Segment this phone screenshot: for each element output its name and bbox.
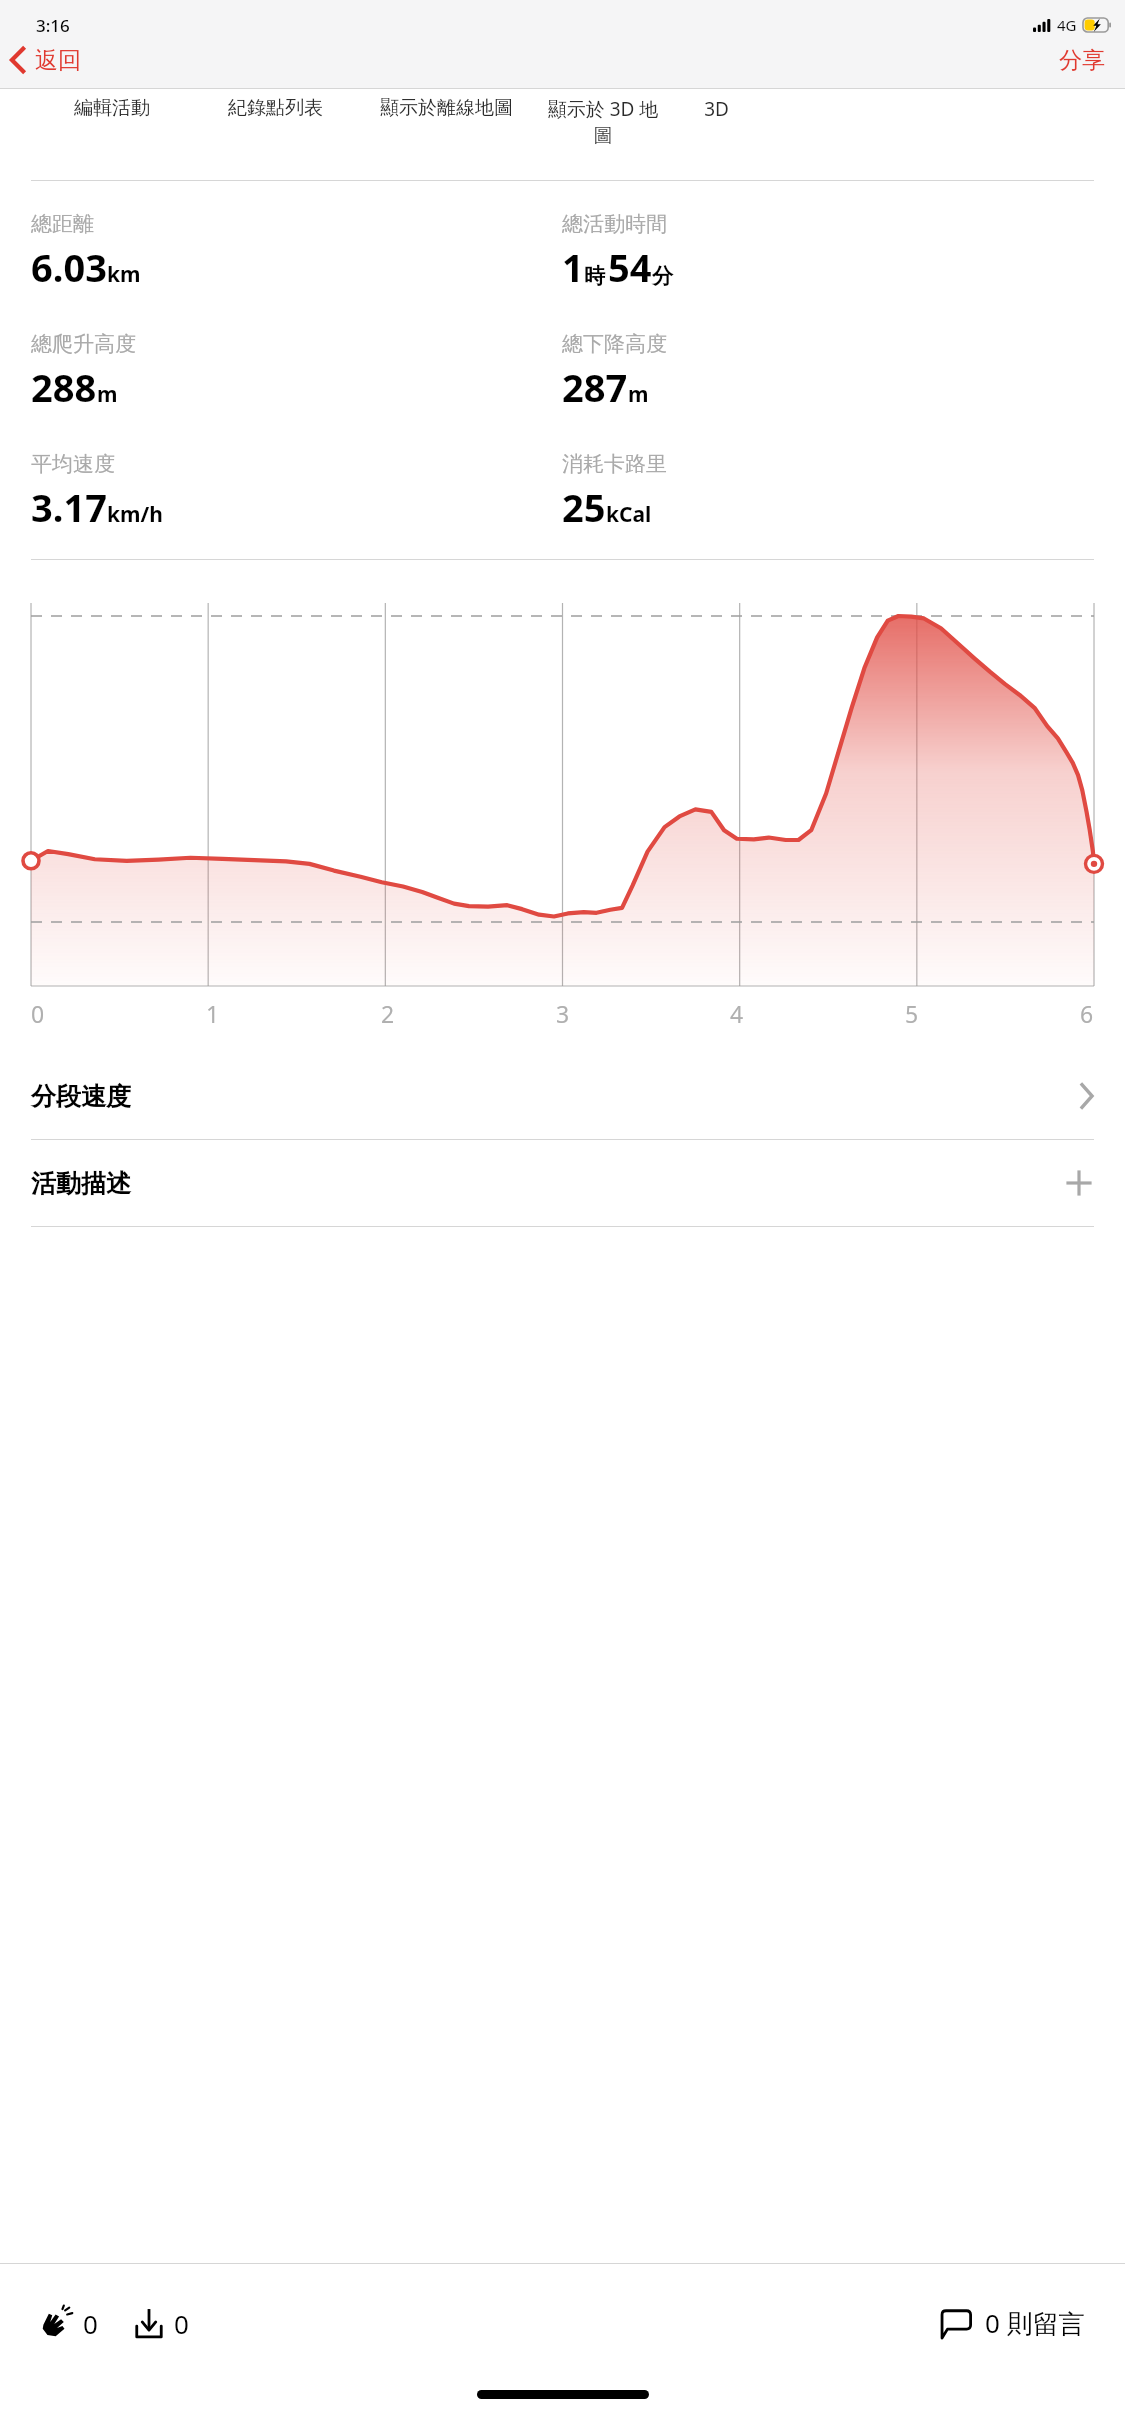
button[interactable]: Download bbox=[126, 2296, 195, 2351]
staticText: 3 bbox=[556, 998, 570, 1029]
staticText: 紀錄點列表 bbox=[228, 96, 323, 120]
staticText: 活動描述 bbox=[31, 1168, 131, 1199]
staticText: 54 bbox=[608, 241, 652, 293]
staticText: 3.17 bbox=[31, 481, 107, 533]
staticText: 287 bbox=[562, 361, 628, 413]
staticText: km/h bbox=[107, 500, 163, 529]
other: Add description bbox=[1064, 1168, 1094, 1198]
button[interactable]: 活動描述 bbox=[31, 1140, 1094, 1226]
button[interactable]: 顯示於離線地圖 bbox=[372, 96, 520, 120]
staticText: 總下降高度 bbox=[562, 331, 667, 357]
staticText: 1 bbox=[562, 241, 584, 293]
button[interactable]: 顯示於 3D 地圖 bbox=[542, 96, 664, 147]
staticText: 總活動時間 bbox=[562, 211, 667, 237]
button[interactable]: 3D bbox=[686, 96, 746, 122]
staticText: 4G bbox=[1057, 15, 1077, 35]
staticText: 顯示於離線地圖 bbox=[380, 96, 513, 120]
other: Download bbox=[132, 2307, 166, 2341]
staticText: 顯示於 3D 地圖 bbox=[542, 96, 664, 147]
staticText: 4 bbox=[730, 998, 744, 1029]
button[interactable]: 編輯活動 bbox=[52, 96, 172, 120]
staticText: kCal bbox=[606, 500, 652, 529]
button[interactable]: 返回 bbox=[0, 32, 95, 88]
staticText: 分 bbox=[652, 263, 673, 289]
staticText: 返回 bbox=[35, 46, 81, 75]
staticText: m bbox=[97, 380, 118, 409]
staticText: 總爬升高度 bbox=[31, 331, 136, 357]
button[interactable]: Applaud bbox=[34, 2296, 104, 2351]
staticText: 編輯活動 bbox=[74, 96, 150, 120]
staticText: 6 bbox=[1080, 998, 1094, 1029]
staticText: 總距離 bbox=[31, 211, 94, 237]
staticText: 0 則留言 bbox=[985, 2305, 1085, 2341]
staticText: 分享 bbox=[1059, 46, 1105, 75]
button[interactable]: 分段速度 bbox=[31, 1053, 1094, 1139]
staticText: 288 bbox=[31, 361, 97, 413]
staticText: 0 bbox=[31, 998, 45, 1029]
staticText: 消耗卡路里 bbox=[562, 451, 667, 477]
staticText: 分段速度 bbox=[31, 1081, 131, 1112]
staticText: 時 bbox=[584, 263, 605, 289]
staticText: 2 bbox=[381, 998, 395, 1029]
staticText: 1 bbox=[206, 998, 220, 1029]
staticText: 3:16 bbox=[36, 14, 70, 37]
staticText: 5 bbox=[905, 998, 919, 1029]
button[interactable]: 0 則留言 bbox=[934, 2295, 1091, 2351]
staticText: m bbox=[628, 380, 649, 409]
button[interactable]: 分享 bbox=[1039, 32, 1125, 88]
staticText: 3D bbox=[704, 96, 729, 122]
other: Applaud bbox=[40, 2307, 74, 2341]
staticText: 6.03 bbox=[31, 241, 107, 293]
staticText: km bbox=[107, 260, 141, 289]
staticText: 平均速度 bbox=[31, 451, 115, 477]
staticText: 25 bbox=[562, 481, 606, 533]
staticText: 0 bbox=[83, 2306, 98, 2341]
staticText: 0 bbox=[174, 2306, 189, 2341]
button[interactable]: 紀錄點列表 bbox=[200, 96, 350, 120]
